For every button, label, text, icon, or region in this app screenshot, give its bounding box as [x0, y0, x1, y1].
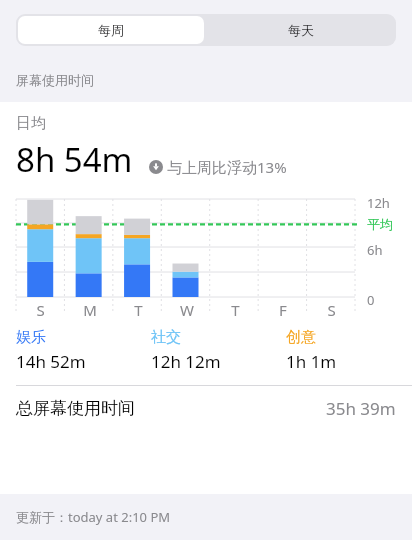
button[interactable]: 总屏幕使用时间 [0, 386, 412, 430]
staticText: 社交 [151, 328, 181, 347]
staticText: 创意 [286, 328, 316, 347]
staticText: 0 [367, 291, 375, 309]
staticText: 8h 54m [16, 137, 133, 182]
staticText: 与上周比浮动13% [167, 157, 287, 177]
staticText: T [231, 300, 240, 316]
staticText: 6h [367, 241, 383, 259]
button[interactable]: 每周 [18, 16, 204, 44]
staticText: S [36, 300, 45, 316]
staticText: 娱乐 [16, 328, 46, 347]
staticText: 日均 [16, 114, 46, 133]
button[interactable]: 社交 [151, 328, 286, 373]
staticText: 屏幕使用时间 [16, 72, 94, 88]
staticText: 12h [367, 194, 390, 209]
button[interactable]: 娱乐 [16, 328, 151, 373]
staticText: 总屏幕使用时间 [16, 398, 135, 419]
staticText: 1h 1m [286, 350, 337, 373]
staticText: S [327, 300, 336, 316]
staticText: 每天 [288, 22, 314, 38]
staticText: M [83, 300, 97, 316]
button[interactable]: 创意 [286, 328, 396, 373]
staticText: F [279, 300, 287, 316]
staticText: 14h 52m [16, 350, 86, 373]
button[interactable]: 每天 [206, 14, 396, 46]
staticText: 平均 [367, 216, 393, 232]
staticText: 12h 12m [151, 350, 221, 373]
staticText: 更新于：today at 2:10 PM [16, 508, 171, 526]
staticText: 每周 [98, 22, 124, 38]
staticText: T [134, 300, 143, 316]
staticText: 35h 39m [326, 397, 396, 420]
staticText: W [180, 300, 194, 316]
